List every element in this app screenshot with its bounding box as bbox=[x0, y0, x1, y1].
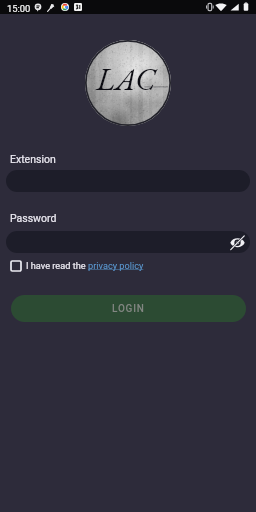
staticText: 15:00 bbox=[7, 3, 31, 14]
staticText: I have read the bbox=[26, 260, 88, 271]
button[interactable]: Password field bbox=[6, 231, 250, 253]
button[interactable]: LOGIN bbox=[11, 295, 246, 322]
staticText: LAC bbox=[96, 58, 156, 100]
staticText: Extension bbox=[10, 153, 56, 165]
staticText: Password bbox=[10, 212, 57, 224]
button[interactable]: Show password bbox=[228, 233, 246, 251]
button[interactable]: I have read the privacy policy bbox=[10, 260, 22, 272]
button[interactable]: privacy policy bbox=[88, 260, 144, 271]
staticText: LOGIN bbox=[112, 303, 145, 315]
